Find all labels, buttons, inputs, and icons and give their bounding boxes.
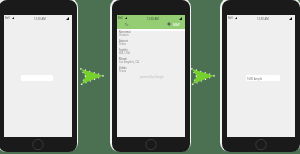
- staticText: Montreal: [119, 30, 131, 34]
- staticText: 12:30 AM: [147, 17, 159, 21]
- staticText: 1600 Amphi: [247, 77, 263, 81]
- button[interactable]: Montreal: [117, 30, 185, 39]
- staticText: Dallas: [119, 66, 127, 70]
- staticText: Bell: [118, 16, 123, 20]
- button[interactable]: My location: [167, 22, 171, 26]
- staticText: powered by Google: [140, 75, 164, 79]
- staticText: Texas: [119, 69, 126, 73]
- staticText: Bell: [228, 16, 233, 20]
- staticText: MAP: [173, 23, 180, 27]
- staticText: Seattle: [119, 48, 128, 52]
- button[interactable]: Miami: [117, 57, 185, 66]
- staticText: Texas: [119, 42, 126, 46]
- button[interactable]: 1600 Amphi: [246, 75, 280, 81]
- staticText: To: [125, 23, 129, 27]
- button[interactable]: Seattle: [117, 48, 185, 57]
- button[interactable]: Dallas: [117, 66, 185, 75]
- staticText: 12:30 AM: [34, 17, 46, 21]
- staticText: Los Angeles, CA: [119, 60, 139, 64]
- staticText: Airport: [119, 39, 128, 43]
- staticText: Miami: [119, 57, 127, 61]
- button[interactable]: Airport: [117, 39, 185, 48]
- staticText: 12:30 AM: [257, 17, 269, 21]
- staticText: Bell: [5, 16, 10, 20]
- staticText: Ontario: [119, 33, 129, 37]
- staticText: WA, USA: [119, 51, 130, 55]
